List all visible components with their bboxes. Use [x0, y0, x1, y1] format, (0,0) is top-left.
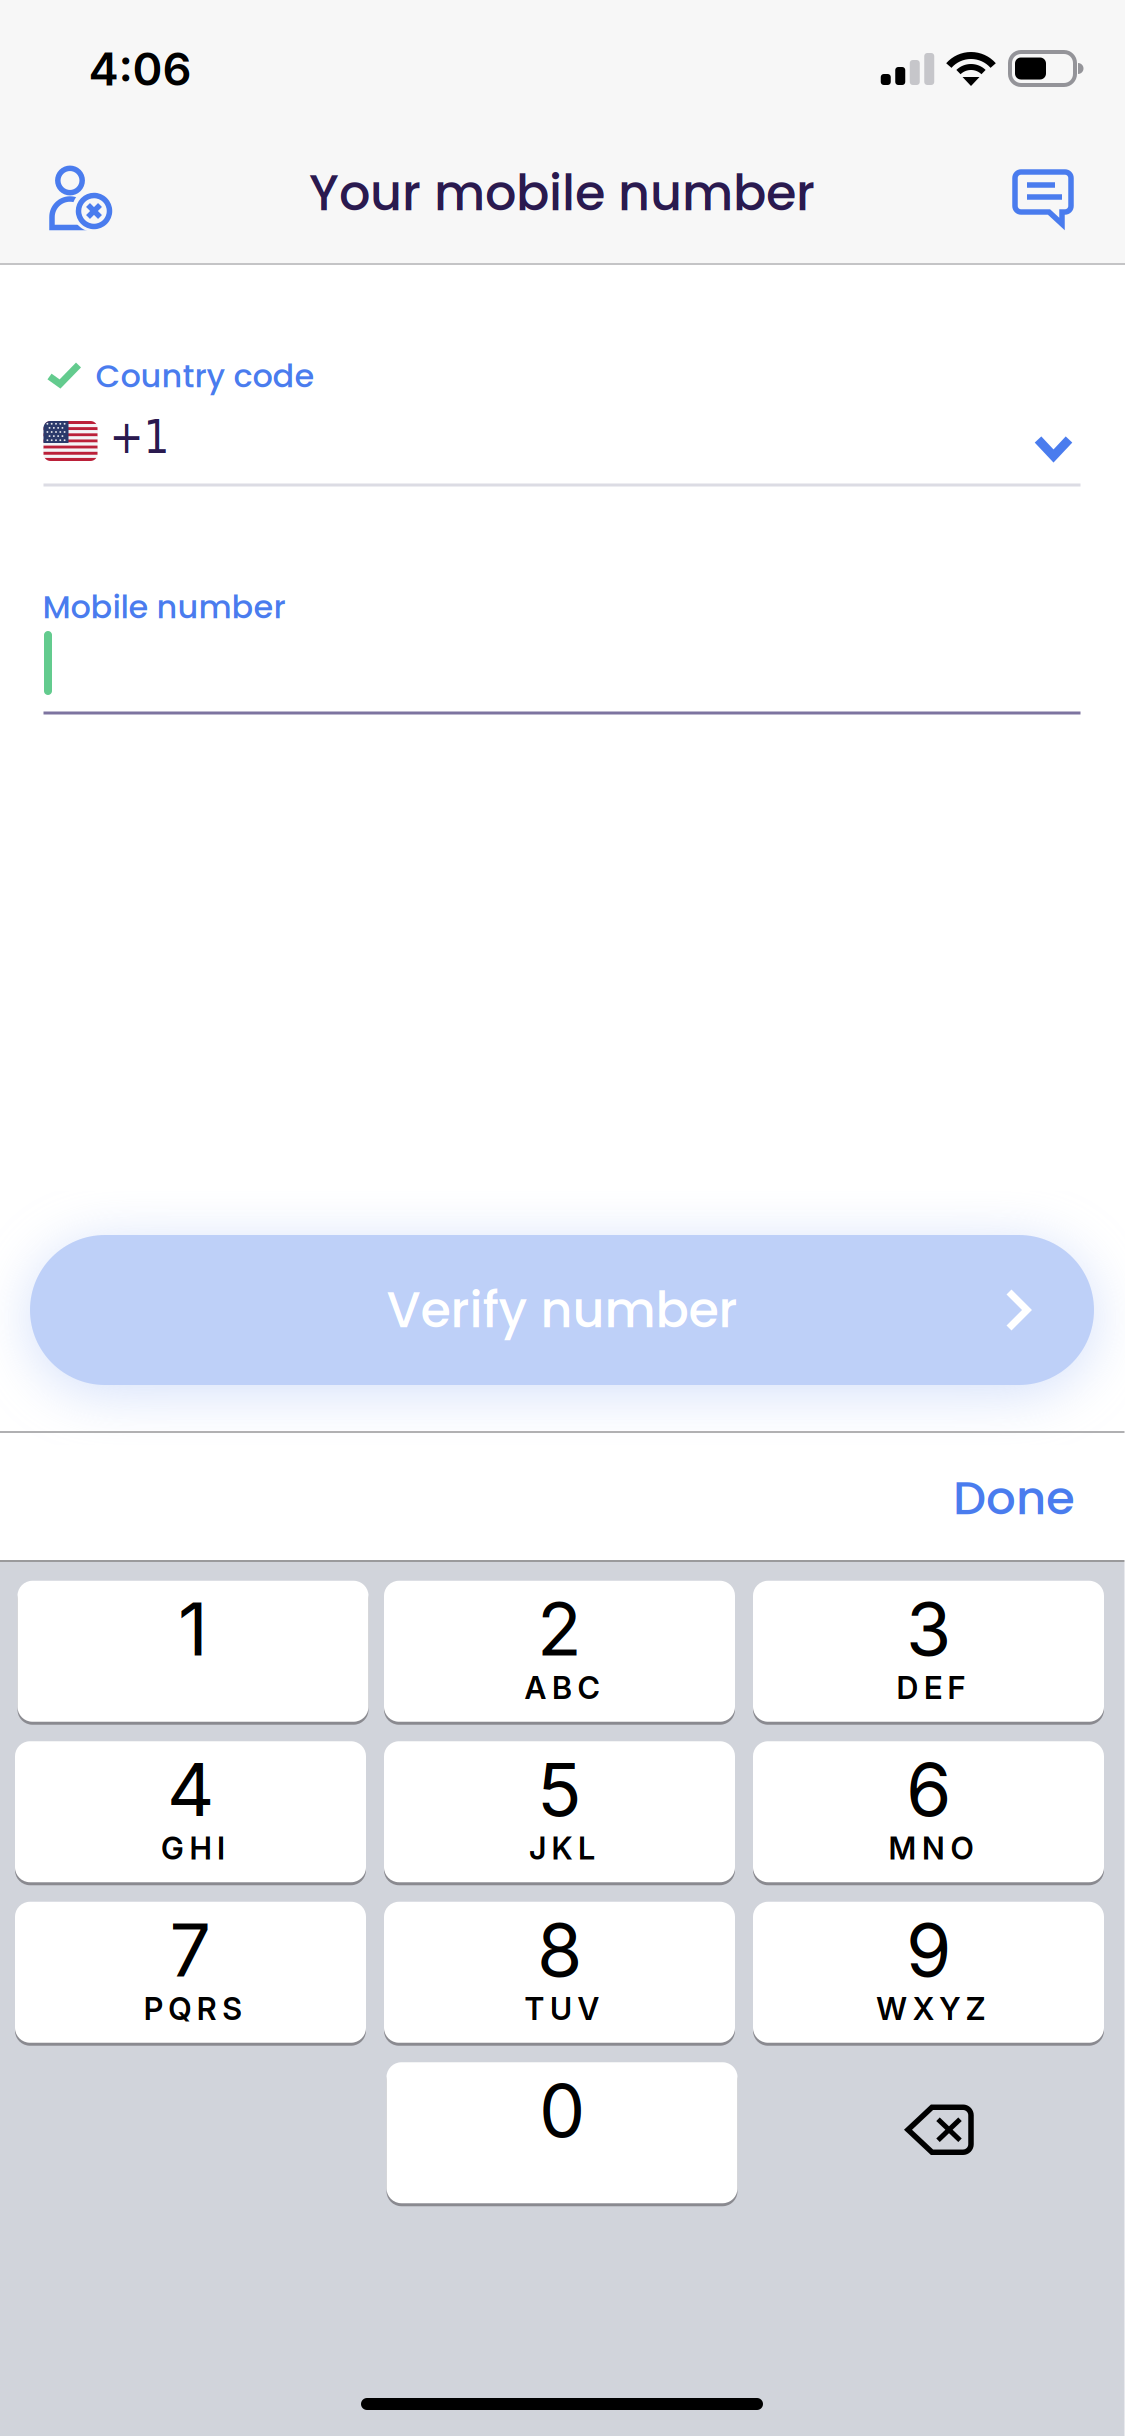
button[interactable]: Done [905, 1435, 1123, 1561]
staticText: 9 [906, 1905, 951, 1994]
staticText: JKL [529, 1830, 595, 1867]
staticText: 4:06 [88, 42, 191, 96]
staticText: ABC [524, 1669, 599, 1706]
staticText: TUV [524, 1990, 599, 2027]
button[interactable]: Chat support [984, 141, 1102, 255]
staticText: Country code [95, 354, 314, 398]
staticText: MNO [888, 1830, 973, 1867]
button[interactable]: 6 [755, 1740, 1106, 1884]
button[interactable]: 2 [386, 1579, 737, 1723]
staticText: PQRS [144, 1990, 242, 2027]
staticText: 8 [537, 1905, 582, 1994]
staticText: 4 [167, 1745, 214, 1834]
button[interactable]: 8 [386, 1900, 737, 2044]
staticText: 3 [906, 1584, 951, 1673]
button[interactable]: Delete [755, 2061, 1106, 2205]
staticText: Your mobile number [309, 158, 815, 228]
button[interactable]: 9 [755, 1900, 1106, 2044]
staticText: 6 [906, 1745, 951, 1834]
button[interactable]: Verify number [30, 1235, 1094, 1385]
button[interactable]: Remove contact [23, 139, 139, 257]
button[interactable]: 7 [17, 1900, 368, 2044]
staticText: 2 [537, 1584, 582, 1673]
staticText: DEF [896, 1669, 965, 1706]
staticText: 7 [169, 1905, 211, 1994]
staticText: Mobile number [42, 585, 285, 629]
staticText: +1 [109, 411, 169, 464]
staticText: GHI [161, 1830, 225, 1867]
button[interactable]: 0 [386, 2061, 737, 2205]
button[interactable]: 3 [755, 1579, 1106, 1723]
staticText: WXYZ [876, 1990, 986, 2027]
staticText: 1 [178, 1584, 208, 1673]
button[interactable]: 5 [386, 1740, 737, 1884]
button[interactable]: 4 [17, 1740, 368, 1884]
button[interactable]: +1 [43, 400, 1080, 482]
staticText: 0 [539, 2066, 585, 2155]
button[interactable]: 1 [17, 1579, 368, 1723]
staticText: Done [953, 1465, 1075, 1531]
staticText: 5 [537, 1745, 582, 1834]
staticText: Verify number [386, 1275, 737, 1345]
